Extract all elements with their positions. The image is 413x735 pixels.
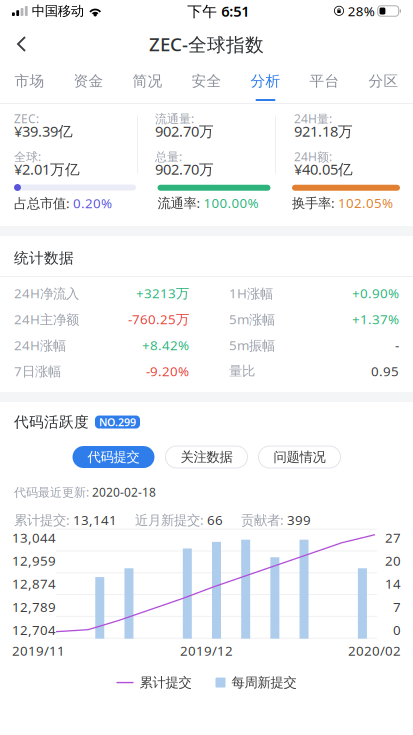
staticText: 24H额: bbox=[294, 148, 332, 164]
staticText: 资金 bbox=[73, 72, 103, 90]
staticText: 下午 6:51 bbox=[187, 1, 249, 21]
staticText: 每周新提交 bbox=[231, 674, 296, 691]
staticText: 902.70万 bbox=[155, 159, 214, 179]
staticText: +0.90% bbox=[352, 284, 399, 302]
staticText: 100.00% bbox=[200, 194, 258, 212]
staticText: 换手率: bbox=[292, 194, 335, 212]
staticText: ¥40.05亿 bbox=[294, 159, 353, 179]
button[interactable]: 关注数据 bbox=[165, 446, 247, 468]
staticText: 安全 bbox=[191, 72, 221, 90]
staticText: 1H涨幅 bbox=[229, 284, 273, 302]
staticText: ZEC: bbox=[14, 110, 39, 126]
staticText: ¥2.01万亿 bbox=[14, 159, 80, 179]
staticText: 5m振幅 bbox=[229, 336, 275, 354]
staticText: 102.05% bbox=[335, 194, 393, 212]
button[interactable]: 安全 bbox=[177, 66, 236, 103]
button[interactable]: 资金 bbox=[59, 66, 118, 103]
button[interactable]: 分析 bbox=[236, 66, 295, 103]
staticText: 28% bbox=[348, 2, 375, 20]
staticText: 27 bbox=[385, 529, 401, 546]
button[interactable]: 市场 bbox=[0, 66, 59, 103]
staticText: 总量: bbox=[155, 148, 182, 164]
staticText: 2019/11 bbox=[12, 642, 65, 659]
staticText: 12,704 bbox=[12, 621, 56, 639]
staticText: ¥39.39亿 bbox=[14, 121, 73, 141]
staticText: 流通率: bbox=[157, 194, 200, 212]
staticText: +3213万 bbox=[136, 284, 189, 302]
staticText: -9.20% bbox=[146, 362, 189, 380]
staticText: 分区 bbox=[368, 72, 398, 90]
staticText: 921.18万 bbox=[294, 121, 353, 141]
staticText: 统计数据 bbox=[14, 249, 74, 267]
staticText: 20 bbox=[385, 552, 401, 569]
staticText: 占总市值: bbox=[14, 194, 70, 212]
staticText: 13,141 bbox=[73, 511, 117, 529]
staticText: 全球: bbox=[14, 148, 41, 164]
staticText: 关注数据 bbox=[180, 449, 232, 465]
staticText: 24H涨幅 bbox=[14, 336, 66, 354]
staticText: 贡献者: bbox=[241, 511, 287, 529]
staticText: 12,959 bbox=[12, 552, 56, 569]
staticText: +8.42% bbox=[142, 336, 189, 354]
staticText: ZEC-全球指数 bbox=[149, 32, 264, 56]
staticText: 流通量: bbox=[155, 110, 194, 126]
staticText: 7 bbox=[393, 598, 401, 616]
button[interactable]: 平台 bbox=[295, 66, 354, 103]
staticText: 2020/02 bbox=[348, 642, 401, 659]
staticText: 0.95 bbox=[371, 362, 399, 380]
staticText: 399 bbox=[287, 511, 311, 529]
button[interactable]: 简况 bbox=[118, 66, 177, 103]
staticText: 0.20% bbox=[70, 194, 112, 212]
staticText: 5m涨幅 bbox=[229, 310, 275, 328]
staticText: 平台 bbox=[309, 72, 339, 90]
staticText: 分析 bbox=[250, 72, 280, 90]
button[interactable]: 代码提交 bbox=[72, 446, 154, 468]
staticText: 累计提交 bbox=[139, 674, 191, 691]
staticText: 12,874 bbox=[12, 575, 56, 592]
staticText: 24H量: bbox=[294, 110, 332, 126]
staticText: 0 bbox=[393, 621, 401, 639]
staticText: 24H净流入 bbox=[14, 284, 79, 302]
staticText: 市场 bbox=[14, 72, 44, 90]
staticText: 量比 bbox=[229, 363, 255, 379]
staticText: NO.299 bbox=[99, 415, 136, 429]
staticText: 代码活跃度 bbox=[14, 413, 89, 431]
button[interactable]: 问题情况 bbox=[258, 446, 340, 468]
staticText: 7日涨幅 bbox=[14, 362, 61, 380]
staticText: 简况 bbox=[132, 72, 162, 90]
staticText: 累计提交: bbox=[14, 511, 73, 529]
staticText: +1.37% bbox=[352, 310, 399, 328]
staticText: 2019/12 bbox=[180, 642, 233, 659]
staticText: 问题情况 bbox=[273, 449, 325, 465]
staticText: 近月新提交: bbox=[135, 511, 207, 529]
staticText: 14 bbox=[385, 575, 401, 592]
staticText: 代码提交 bbox=[87, 449, 139, 465]
staticText: 2020-02-18 bbox=[92, 484, 156, 500]
staticText: 12,789 bbox=[12, 598, 56, 616]
staticText: 902.70万 bbox=[155, 121, 214, 141]
button[interactable]: Back bbox=[0, 22, 37, 66]
staticText: - bbox=[395, 336, 399, 354]
staticText: 66 bbox=[207, 511, 223, 529]
staticText: 中国移动 bbox=[32, 3, 84, 19]
staticText: 13,044 bbox=[12, 529, 56, 546]
staticText: 24H主净额 bbox=[14, 310, 79, 328]
button[interactable]: 分区 bbox=[354, 66, 413, 103]
staticText: -760.25万 bbox=[128, 310, 189, 328]
staticText: 代码最近更新: bbox=[14, 484, 92, 500]
